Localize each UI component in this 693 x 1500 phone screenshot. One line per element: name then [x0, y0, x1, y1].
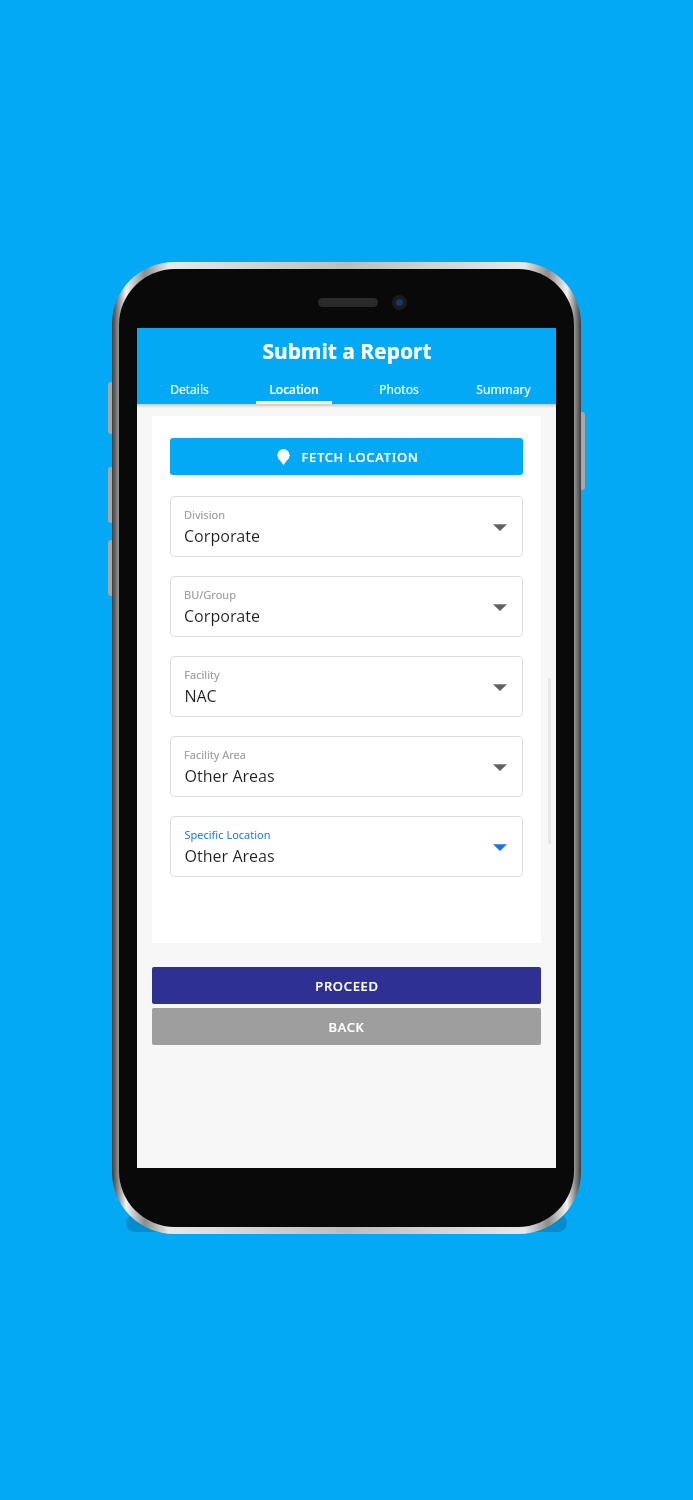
staticText: BU/Group	[184, 587, 236, 602]
staticText: Photos	[379, 381, 419, 397]
staticText: Location	[269, 381, 319, 397]
staticText: Division	[184, 507, 225, 522]
staticText: PROCEED	[315, 977, 379, 995]
button[interactable]: PROCEED	[152, 967, 541, 1004]
button[interactable]: Facility	[170, 656, 523, 717]
button[interactable]: FETCH LOCATION	[170, 438, 523, 475]
staticText: Specific Location	[184, 827, 271, 842]
button[interactable]: Location	[241, 374, 346, 404]
staticText: Summary	[476, 381, 531, 397]
staticText: Submit a Report	[262, 337, 432, 366]
button[interactable]: Summary	[451, 374, 556, 404]
staticText: Other Areas	[184, 845, 275, 867]
button[interactable]: BU/Group	[170, 576, 523, 637]
staticText: Facility	[184, 667, 220, 682]
staticText: Other Areas	[184, 765, 275, 787]
staticText: FETCH LOCATION	[301, 448, 419, 466]
button[interactable]: Details	[137, 374, 241, 404]
staticText: NAC	[184, 685, 217, 707]
staticText: Corporate	[184, 525, 260, 547]
staticText: Details	[170, 381, 209, 397]
button[interactable]: Specific Location	[170, 816, 523, 877]
staticText: Corporate	[184, 605, 260, 627]
staticText: BACK	[328, 1018, 365, 1036]
button[interactable]: BACK	[152, 1008, 541, 1045]
button[interactable]: Division	[170, 496, 523, 557]
staticText: Facility Area	[184, 747, 246, 762]
button[interactable]: Photos	[346, 374, 451, 404]
button[interactable]: Facility Area	[170, 736, 523, 797]
